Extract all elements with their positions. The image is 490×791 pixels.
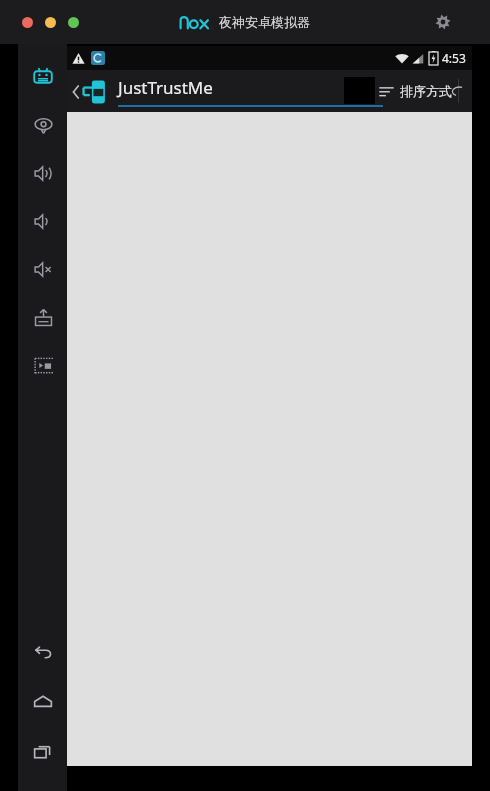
button[interactable]: More options — [459, 76, 472, 106]
button[interactable]: Navigate up — [67, 79, 110, 105]
button[interactable]: Settings — [432, 11, 454, 33]
staticText: JustTrustMe — [118, 76, 213, 99]
button[interactable]: Volume up — [26, 156, 60, 190]
button[interactable]: Home — [26, 685, 60, 719]
button[interactable]: Location — [26, 108, 60, 142]
staticText: 4:53 — [442, 50, 466, 66]
button[interactable]: JustTrustMe — [118, 76, 383, 107]
button[interactable]: Close — [22, 17, 33, 28]
button[interactable]: Android robot — [26, 60, 60, 94]
button[interactable]: Volume down — [26, 204, 60, 238]
button[interactable]: Recents — [26, 735, 60, 769]
staticText: 排序方式 — [400, 83, 452, 99]
button[interactable]: Back — [26, 635, 60, 669]
button[interactable]: Minimize — [45, 17, 56, 28]
staticText: 夜神安卓模拟器 — [219, 14, 310, 30]
button[interactable]: Macro recorder — [26, 348, 60, 382]
button[interactable]: Maximize — [68, 17, 79, 28]
button[interactable]: 排序方式 — [373, 83, 458, 99]
button[interactable]: Mute — [26, 252, 60, 286]
button[interactable]: Install APK — [26, 300, 60, 334]
